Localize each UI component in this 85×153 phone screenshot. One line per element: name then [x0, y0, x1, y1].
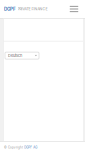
button[interactable]: DGPF AG — [24, 146, 37, 149]
staticText: DGPF AG — [24, 146, 37, 149]
staticText: © Copyright — [4, 146, 23, 149]
staticText: PRIVATE FINANCE — [17, 7, 47, 11]
button[interactable]: Deutsch — [5, 52, 39, 59]
button[interactable]: Menu — [68, 3, 80, 15]
staticText: Deutsch — [8, 53, 22, 58]
staticText: DGPF — [4, 6, 16, 12]
